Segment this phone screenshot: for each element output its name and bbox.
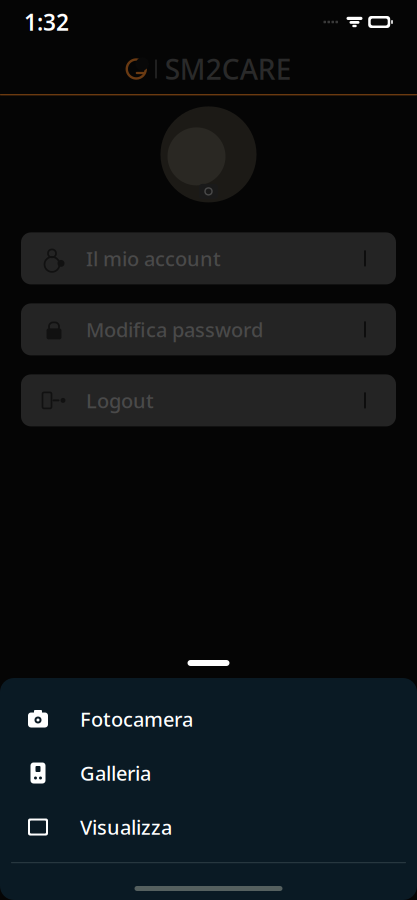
staticText: Visualizza (80, 814, 172, 840)
button[interactable]: Modifica password (21, 303, 396, 355)
staticText: Fotocamera (80, 706, 193, 732)
staticText: SM2CARE (165, 50, 292, 88)
staticText: Il mio account (86, 245, 221, 272)
button[interactable]: Change profile photo (0, 102, 417, 206)
staticText: Galleria (80, 760, 151, 786)
staticText: Modifica password (86, 316, 263, 343)
button[interactable]: Visualizza (0, 800, 417, 854)
staticText: Logout (86, 387, 154, 414)
button[interactable]: Galleria (0, 746, 417, 800)
button[interactable]: Fotocamera (0, 692, 417, 746)
button[interactable]: Il mio account (21, 232, 396, 284)
button[interactable]: Logout (21, 374, 396, 426)
staticText: 1:32 (24, 7, 69, 37)
